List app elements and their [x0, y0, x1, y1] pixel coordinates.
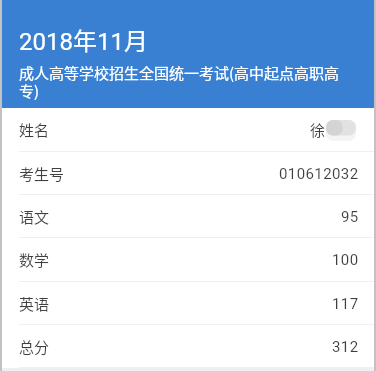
staticText: 英语 [19, 293, 50, 315]
button[interactable]: 英语 [2, 282, 374, 325]
staticText: 总分 [19, 336, 50, 358]
button[interactable]: 总分 [2, 325, 374, 368]
staticText: 100 [332, 251, 359, 269]
button[interactable]: 考生号 [2, 152, 374, 195]
staticText: 117 [332, 295, 359, 313]
staticText: 徐 [310, 119, 326, 141]
staticText: 95 [341, 208, 359, 226]
button[interactable]: 姓名 [2, 108, 374, 152]
staticText: 2018年11月 [19, 22, 148, 57]
staticText: 语文 [19, 206, 50, 228]
staticText: 姓名 [19, 119, 50, 141]
staticText: 数学 [19, 249, 50, 271]
button[interactable]: 数学 [2, 238, 374, 282]
staticText: 010612032 [279, 165, 359, 183]
staticText: 考生号 [19, 163, 65, 185]
staticText: 成人高等学校招生全国统一考试(高中起点高职高专) [19, 62, 356, 101]
button[interactable]: 语文 [2, 195, 374, 238]
button[interactable]: 2018年11月 [2, 0, 374, 108]
staticText: 312 [332, 338, 359, 356]
